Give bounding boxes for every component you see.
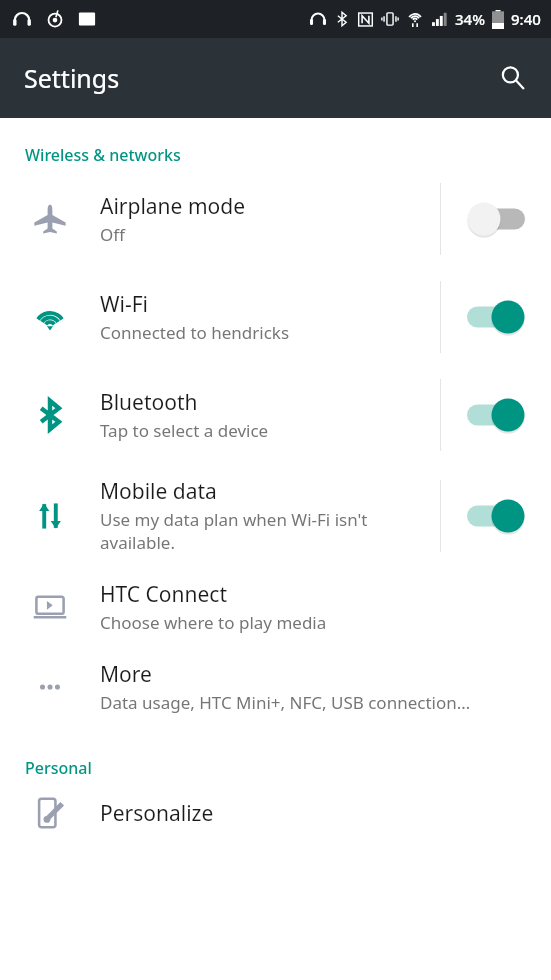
staticText: Settings [24,61,120,95]
staticText: Mobile data [100,477,217,506]
staticText: Wi-Fi [100,290,149,319]
button[interactable]: More [0,647,551,727]
staticText: HTC Connect [100,580,227,609]
button[interactable]: Airplane mode switch [441,202,551,236]
button[interactable]: Bluetooth [0,366,551,464]
button[interactable]: Wi-Fi [0,268,551,366]
button[interactable]: Wi-Fi switch [441,300,551,334]
button[interactable]: Mobile data [0,464,551,567]
staticText: Connected to hendricks [100,321,290,344]
staticText: Airplane mode [100,192,246,221]
button[interactable]: Bluetooth switch [441,398,551,432]
staticText: Tap to select a device [100,419,269,442]
staticText: Data usage, HTC Mini+, NFC, USB connecti… [100,691,471,714]
staticText: 34% [455,9,485,29]
staticText: Bluetooth [100,388,198,417]
button[interactable]: HTC Connect [0,567,551,647]
button[interactable]: Airplane mode [0,170,551,268]
staticText: Use my data plan when Wi-Fi isn't availa… [100,508,428,554]
staticText: More [100,660,152,689]
staticText: Off [100,223,125,246]
button[interactable]: Personalize [0,783,551,843]
staticText: Personalize [100,799,214,828]
button[interactable]: Search [487,52,539,104]
button[interactable]: Mobile data switch [441,499,551,533]
staticText: Choose where to play media [100,611,327,634]
staticText: Wireless & networks [25,144,181,166]
staticText: Personal [25,757,92,779]
staticText: 9:40 [511,9,541,29]
